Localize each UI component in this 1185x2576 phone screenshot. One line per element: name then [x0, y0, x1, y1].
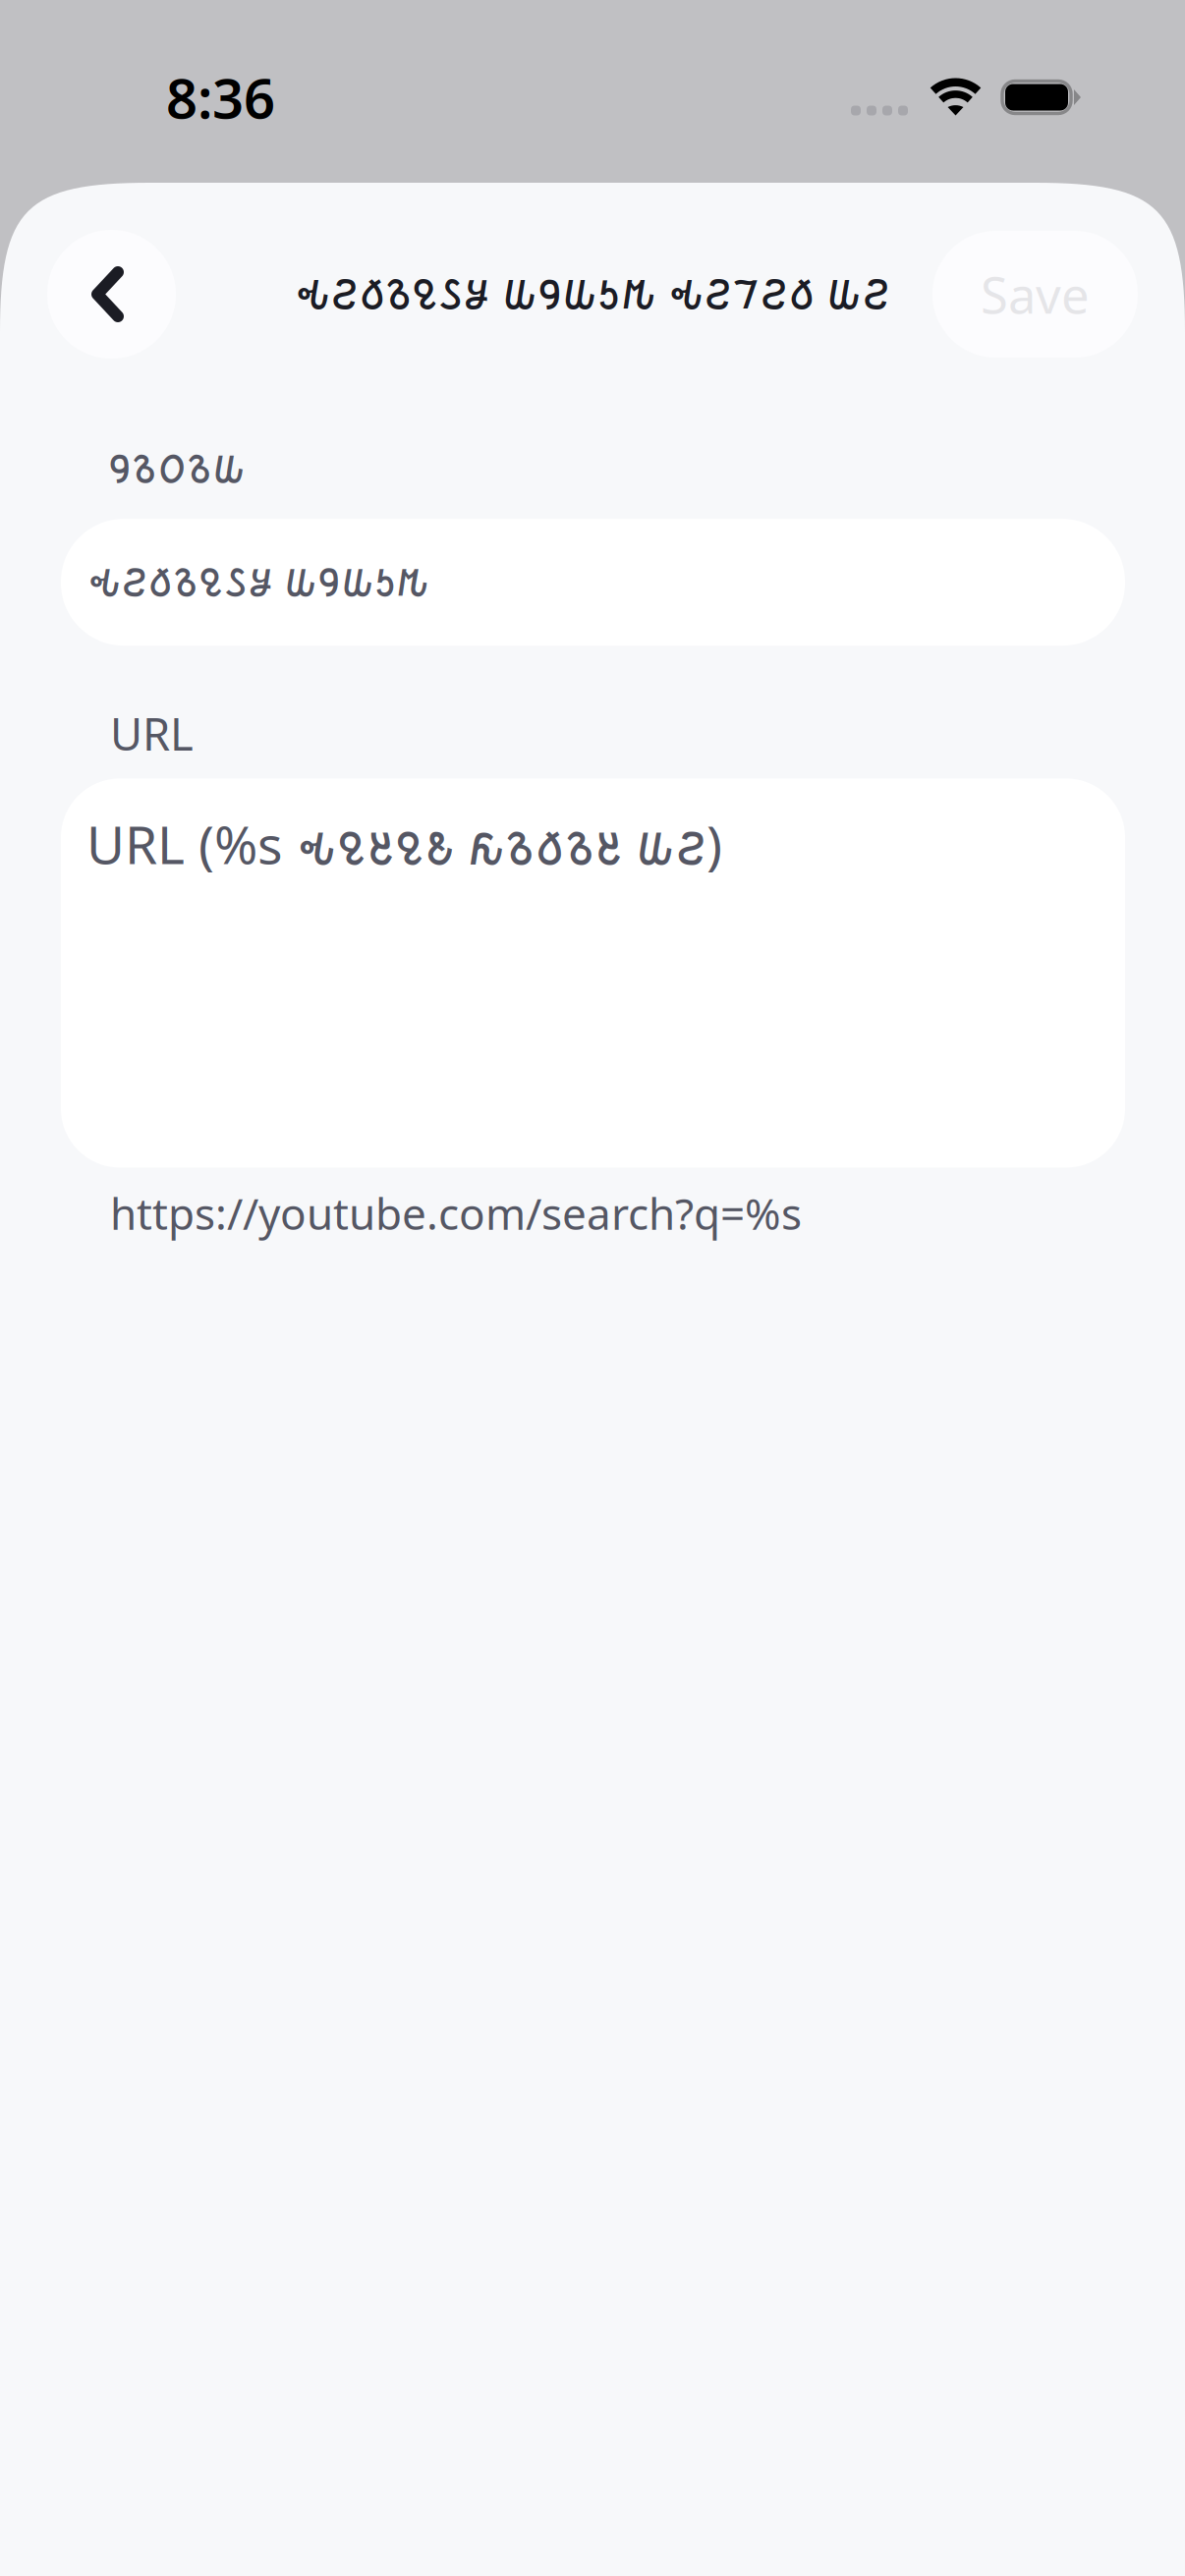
staticText: Save: [981, 261, 1090, 327]
staticText: 𐒘𐒈𐒆𐒈𐒜: [108, 447, 246, 490]
staticText: 𐒂𐒒𐒀𐒈𐒉𐒖𐒋 𐒜𐒘𐒜𐒑𐒄 𐒂𐒒𐒇𐒒𐒀 𐒜𐒒: [295, 271, 890, 317]
staticText: URL: [110, 704, 194, 763]
button[interactable]: Save: [932, 231, 1138, 358]
staticText: 𐒂𐒒𐒀𐒈𐒉𐒖𐒋 𐒜𐒘𐒜𐒑𐒄: [87, 561, 429, 604]
staticText: URL (%s 𐒂𐒉𐒔𐒉𐒕 𐒅𐒈𐒀𐒈𐒔 𐒜𐒒): [86, 809, 722, 879]
staticText: https://youtube.com/search?q=%s: [110, 1184, 802, 1242]
button[interactable]: Back: [47, 230, 176, 359]
staticText: 8:36: [166, 61, 275, 134]
